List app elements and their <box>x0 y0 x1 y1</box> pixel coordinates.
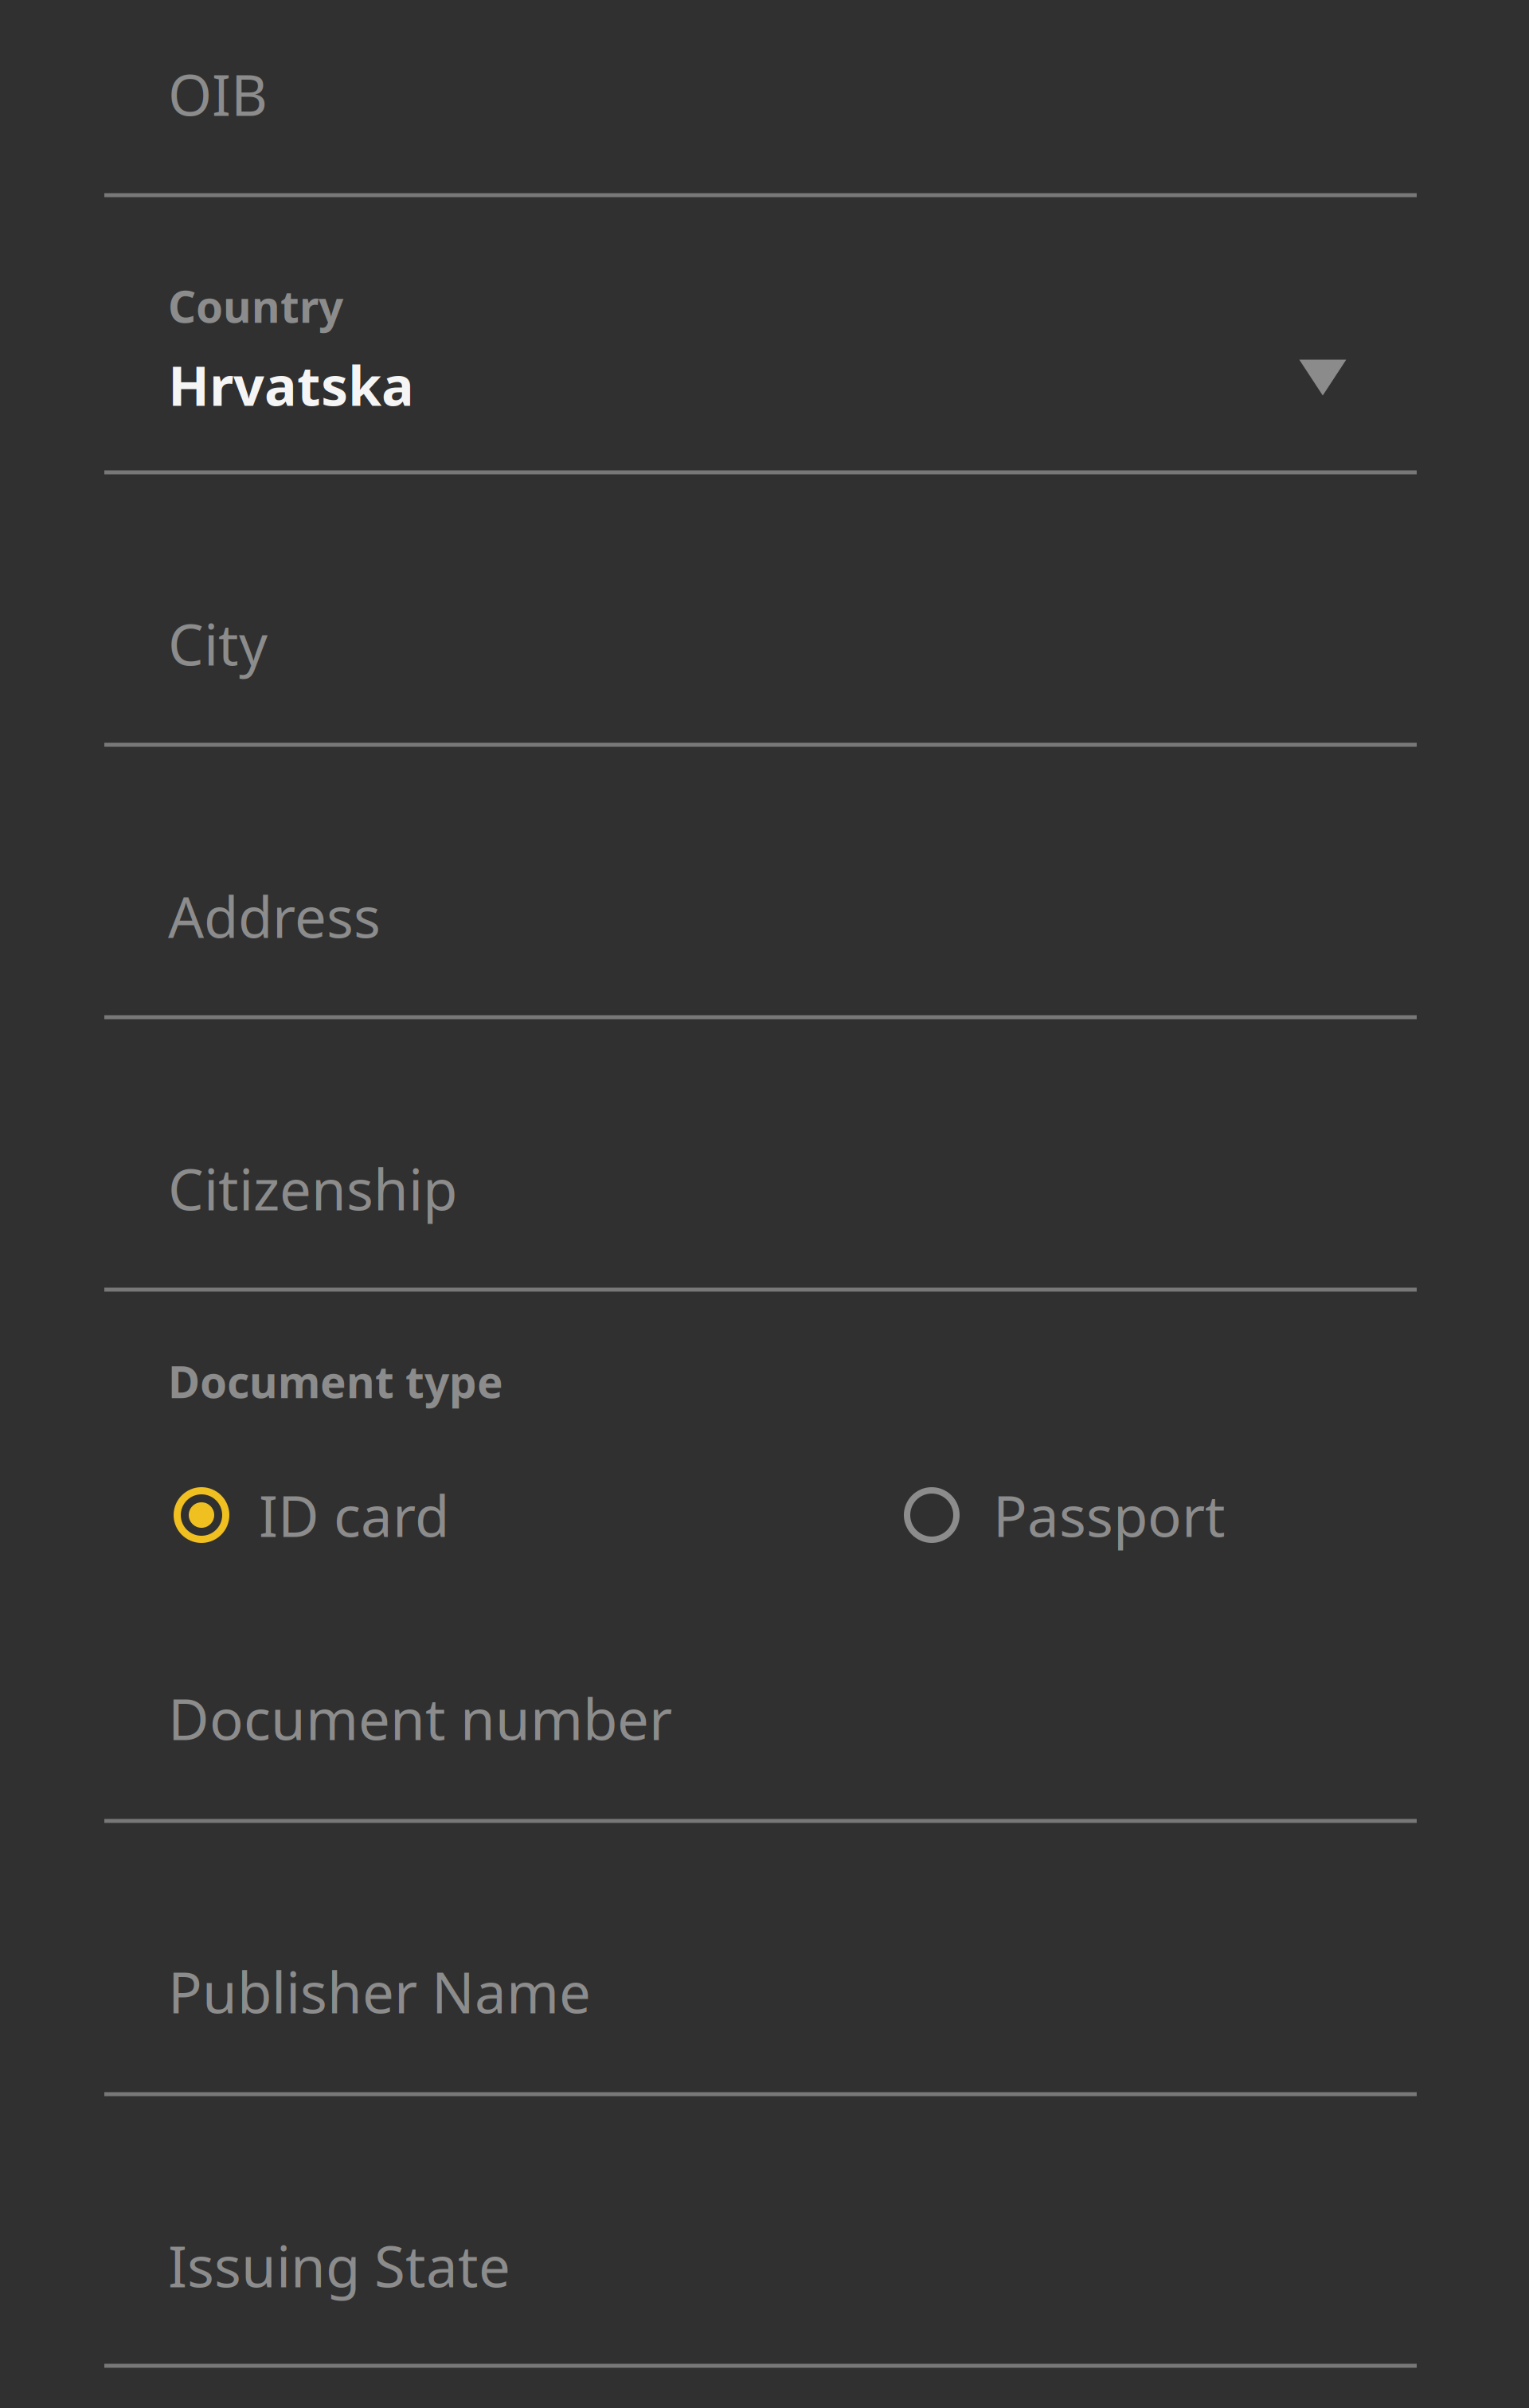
staticText: OIB <box>168 57 268 131</box>
button[interactable]: City <box>168 584 1480 703</box>
staticText: Publisher Name <box>168 1954 591 2029</box>
button[interactable]: ID card <box>174 1455 588 1575</box>
button[interactable]: OIB <box>168 34 1480 154</box>
staticText: Document type <box>168 1352 503 1410</box>
staticText: Country <box>168 277 343 335</box>
button[interactable]: Country <box>104 231 1417 500</box>
staticText: City <box>168 606 268 681</box>
button[interactable]: Issuing State <box>168 2206 1480 2325</box>
button[interactable]: Document number <box>168 1658 1480 1778</box>
button[interactable]: Passport <box>904 1455 1318 1575</box>
staticText: ID card <box>259 1478 449 1552</box>
button[interactable]: Citizenship <box>168 1129 1480 1248</box>
staticText: Document number <box>168 1681 672 1756</box>
button[interactable]: Address <box>168 856 1480 976</box>
staticText: Citizenship <box>168 1151 457 1226</box>
staticText: Issuing State <box>168 2228 510 2303</box>
button[interactable]: Publisher Name <box>168 1932 1480 2051</box>
staticText: Hrvatska <box>168 349 414 421</box>
staticText: Address <box>168 879 381 953</box>
staticText: Passport <box>993 1478 1226 1552</box>
